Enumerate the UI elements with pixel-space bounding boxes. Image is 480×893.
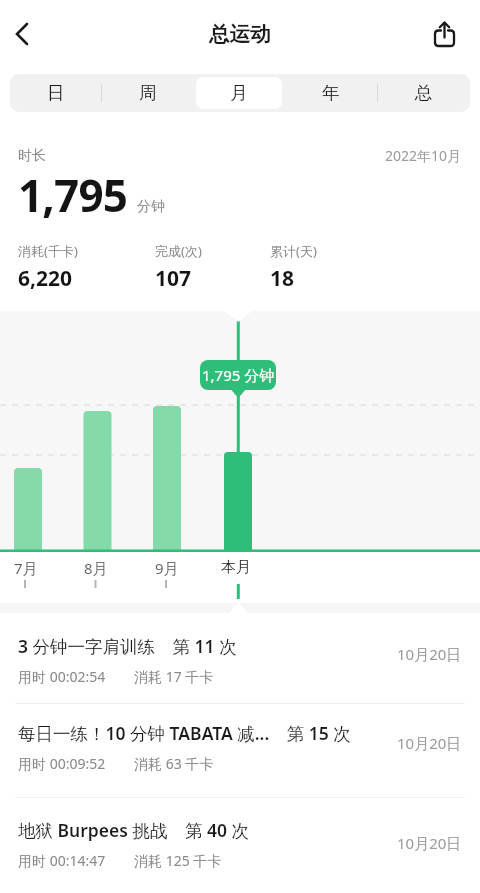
button[interactable]: 月	[196, 77, 282, 109]
staticText: 周	[139, 82, 157, 104]
staticText: 消耗(千卡)	[18, 242, 78, 260]
staticText: 完成(次)	[155, 242, 202, 260]
staticText: 地狱 Burpees 挑战 第 40 次	[18, 818, 250, 842]
staticText: 10月20日	[397, 833, 462, 853]
staticText: 消耗 63 千卡	[134, 754, 214, 773]
staticText: 9月	[155, 558, 179, 578]
staticText: 月	[230, 82, 248, 104]
staticText: 用时 00:02:54	[18, 667, 106, 686]
staticText: 累计(天)	[270, 242, 317, 260]
staticText: 8月	[84, 558, 108, 578]
staticText: 用时 00:09:52	[18, 754, 106, 773]
staticText: 年	[322, 82, 340, 104]
staticText: 107	[155, 264, 192, 293]
button[interactable]: 年	[285, 74, 377, 112]
staticText: 日	[47, 82, 65, 104]
staticText: 2022年10月	[385, 146, 462, 165]
button[interactable]: 每日一练！10 分钟 TABATA 减... 第 15 次	[0, 704, 480, 797]
staticText: 10月20日	[397, 733, 462, 753]
button[interactable]: 日	[10, 74, 101, 112]
staticText: 总运动	[209, 21, 271, 47]
staticText: 7月	[14, 558, 38, 578]
staticText: 分钟	[137, 198, 165, 216]
button[interactable]: 3 分钟一字肩训练 第 11 次	[0, 613, 480, 703]
staticText: 本月	[221, 558, 251, 577]
staticText: 1,795	[18, 165, 128, 225]
staticText: 用时 00:14:47	[18, 851, 106, 870]
staticText: 消耗 17 千卡	[134, 667, 214, 686]
staticText: 10月20日	[397, 644, 462, 664]
staticText: 总	[415, 82, 433, 104]
button[interactable]: 1,795 分钟	[200, 360, 276, 390]
staticText: 消耗 125 千卡	[134, 851, 222, 870]
staticText: 3 分钟一字肩训练 第 11 次	[18, 634, 237, 658]
button[interactable]: 周	[102, 74, 193, 112]
button[interactable]	[430, 18, 462, 50]
button[interactable]: 总	[378, 74, 470, 112]
staticText: 时长	[18, 147, 46, 165]
staticText: 6,220	[18, 264, 73, 293]
staticText: 1,795 分钟	[202, 365, 275, 385]
button[interactable]: 地狱 Burpees 挑战 第 40 次	[0, 798, 480, 893]
staticText: 18	[270, 264, 295, 293]
button[interactable]	[6, 14, 46, 54]
staticText: 每日一练！10 分钟 TABATA 减... 第 15 次	[18, 721, 351, 745]
